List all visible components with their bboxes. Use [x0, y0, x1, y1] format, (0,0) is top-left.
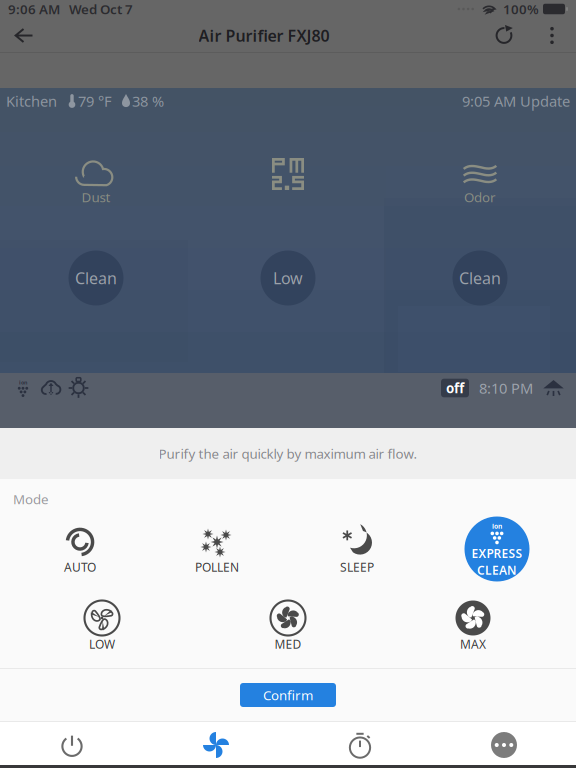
staticText: Mode — [13, 490, 49, 508]
button[interactable]: SLEEP — [321, 535, 393, 587]
button[interactable]: Timer — [288, 722, 432, 768]
staticText: 38 % — [132, 91, 164, 111]
staticText: POLLEN — [195, 559, 239, 575]
staticText: SLEEP — [340, 559, 374, 575]
staticText: 79 °F — [78, 91, 112, 111]
staticText: 9:05 AM Update — [462, 91, 570, 111]
button[interactable]: More options — [528, 18, 576, 53]
staticText: Kitchen — [6, 91, 57, 111]
staticText: EXPRESS — [471, 545, 522, 561]
staticText: Purify the air quickly by maximum air fl… — [158, 445, 417, 462]
staticText: MED — [274, 636, 301, 652]
button[interactable]: Fan speed — [144, 722, 288, 768]
staticText: AUTO — [64, 559, 96, 575]
staticText: ion — [19, 379, 27, 386]
button[interactable]: POLLEN — [181, 535, 253, 587]
staticText: ion — [492, 522, 502, 531]
staticText: 8:10 PM — [479, 378, 533, 398]
staticText: MAX — [460, 636, 486, 652]
staticText: Odor — [464, 188, 496, 206]
staticText: 9:06 AM — [8, 0, 60, 18]
staticText: Air Purifier FXJ80 — [198, 25, 329, 46]
staticText: CLEAN — [477, 562, 517, 578]
staticText: Clean — [459, 267, 501, 289]
button[interactable]: Back — [0, 18, 48, 53]
button[interactable]: Confirm — [240, 683, 336, 707]
button[interactable]: MED — [252, 612, 324, 664]
button[interactable]: Refresh — [480, 18, 528, 53]
button[interactable]: More — [432, 722, 576, 768]
button[interactable]: MAX — [437, 612, 509, 664]
staticText: Wed Oct 7 — [69, 0, 133, 18]
button[interactable]: AUTO — [44, 535, 116, 587]
staticText: Low — [273, 267, 303, 289]
staticText: Dust — [81, 188, 110, 206]
staticText: Confirm — [263, 686, 313, 704]
button[interactable]: Power — [0, 722, 144, 768]
staticText: off — [446, 379, 464, 397]
button[interactable]: ion — [464, 516, 529, 581]
button[interactable]: LOW — [66, 612, 138, 664]
staticText: Clean — [75, 267, 117, 289]
staticText: 100% — [503, 0, 539, 18]
staticText: LOW — [89, 636, 115, 652]
